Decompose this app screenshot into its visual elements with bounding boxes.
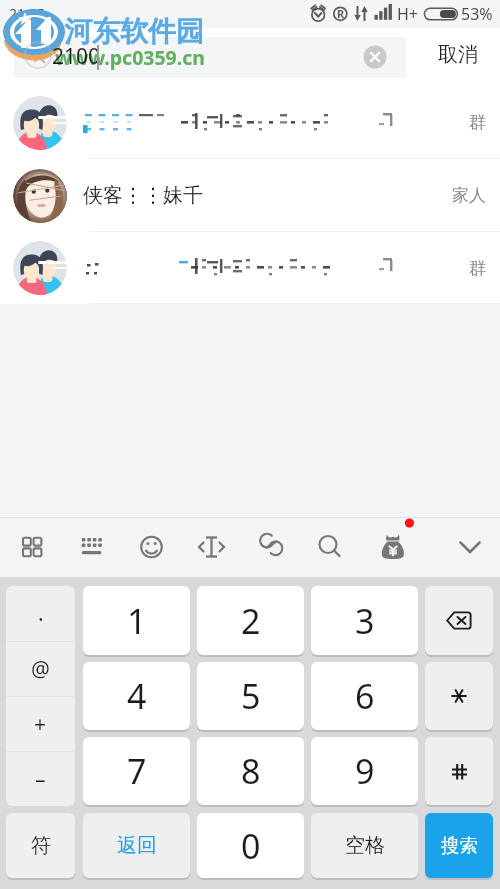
button[interactable]: Wallet (371, 524, 415, 570)
staticText: 0 (241, 823, 261, 869)
button[interactable]: Clipboard (249, 524, 293, 570)
button[interactable]: – (6, 752, 75, 806)
button[interactable]: Clear text (362, 44, 388, 70)
staticText: . (38, 599, 44, 628)
button[interactable]: 取消 (416, 28, 500, 78)
staticText: 群 (469, 112, 486, 133)
button[interactable]: Panels (10, 524, 54, 570)
button[interactable]: + (6, 697, 75, 751)
button[interactable]: Keyboard layout (70, 524, 114, 570)
button[interactable]: Hash (425, 737, 493, 805)
staticText: 8 (241, 748, 261, 794)
button[interactable]: 群 (0, 232, 500, 304)
button[interactable]: Asterisk (425, 662, 493, 730)
button[interactable]: 9 (311, 737, 418, 805)
button[interactable]: 8 (197, 737, 304, 805)
button[interactable]: 1 (83, 586, 190, 655)
staticText: + (34, 710, 47, 739)
button[interactable]: 2 (197, 586, 304, 655)
staticText: 返回 (117, 833, 157, 858)
staticText: 2100 (52, 42, 101, 71)
button[interactable]: Backspace (425, 586, 493, 655)
staticText: 群 (469, 258, 486, 279)
staticText: 3 (355, 598, 375, 644)
staticText: 家人 (452, 185, 486, 206)
staticText: 21:55 (9, 4, 45, 23)
staticText: 4 (127, 673, 147, 719)
staticText: 53% (461, 3, 493, 25)
staticText: 河东软件园 (64, 14, 204, 49)
staticText: 9 (355, 748, 375, 794)
staticText: @ (31, 655, 50, 684)
button[interactable]: Emoji (130, 524, 174, 570)
staticText: 搜索 (441, 834, 478, 857)
button[interactable]: 0 (197, 813, 304, 878)
button[interactable]: 7 (83, 737, 190, 805)
staticText: 1 (127, 598, 147, 644)
staticText: 7 (127, 748, 147, 794)
staticText: 侠客⋮⋮妹千 (83, 183, 203, 208)
button[interactable]: 搜索 (425, 813, 493, 878)
staticText: 5 (241, 673, 261, 719)
button[interactable]: Move cursor (190, 524, 234, 570)
button[interactable]: 3 (311, 586, 418, 655)
button[interactable] (14, 37, 406, 78)
staticText: – (35, 765, 46, 794)
staticText: R (337, 6, 345, 21)
button[interactable]: 返回 (83, 813, 190, 878)
button[interactable]: 群 (0, 86, 500, 159)
button[interactable]: Hide keyboard (448, 524, 492, 570)
button[interactable]: . (6, 586, 75, 641)
staticText: H+ (397, 3, 419, 25)
button[interactable]: 空格 (311, 813, 418, 878)
button[interactable]: Search (308, 524, 352, 570)
button[interactable]: 5 (197, 662, 304, 730)
staticText: www.pc0359.cn (55, 44, 205, 71)
button[interactable]: 4 (83, 662, 190, 730)
button[interactable]: 符 (6, 813, 75, 878)
button[interactable]: @ (6, 642, 75, 696)
staticText: 取消 (438, 42, 478, 67)
staticText: 符 (31, 833, 51, 858)
button[interactable]: 6 (311, 662, 418, 730)
staticText: 2 (241, 598, 261, 644)
staticText: 6 (355, 673, 375, 719)
button[interactable]: 侠客⋮⋮妹千 (0, 159, 500, 232)
staticText: 空格 (345, 833, 385, 858)
